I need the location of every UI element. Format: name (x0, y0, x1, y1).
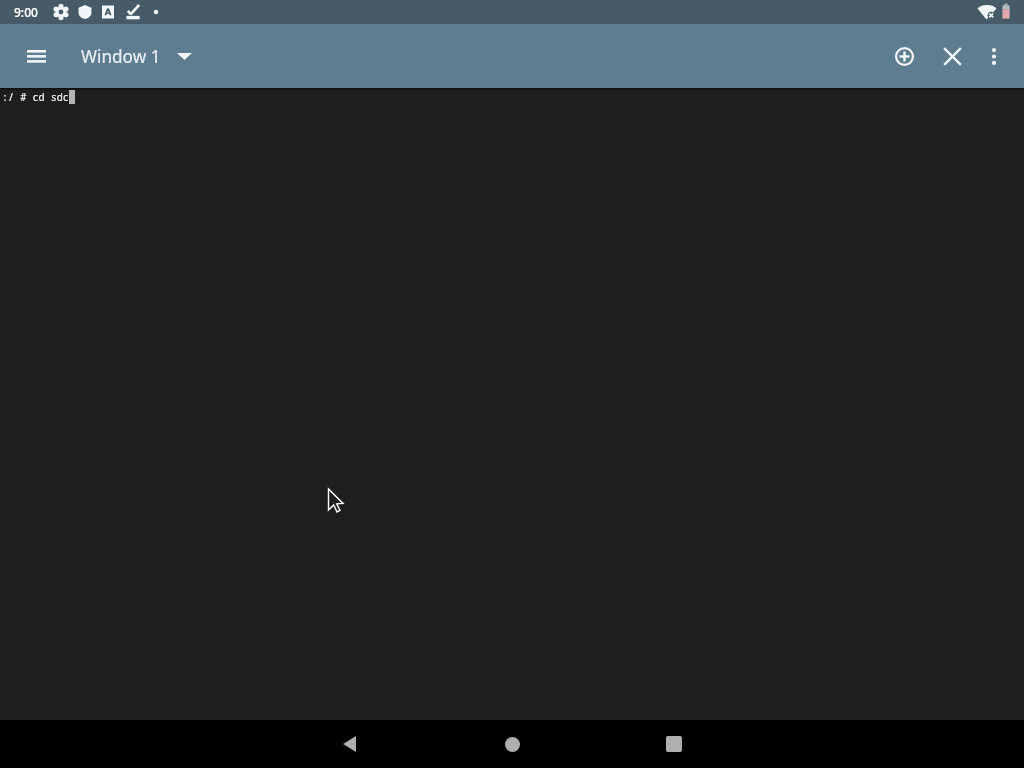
button[interactable]: Open navigation drawer (4, 24, 68, 88)
staticText: :/ # cd sdc (2, 90, 69, 104)
staticText: 9:00 (14, 4, 38, 20)
button[interactable]: Home (488, 720, 536, 768)
staticText: Window 1 (81, 45, 161, 68)
button[interactable]: Window 1 (81, 45, 198, 68)
button[interactable]: Back (325, 720, 373, 768)
button[interactable]: New window (880, 32, 928, 80)
button[interactable]: Recent apps (650, 720, 698, 768)
button[interactable]: Close (928, 32, 976, 80)
button[interactable]: More options (970, 32, 1018, 80)
